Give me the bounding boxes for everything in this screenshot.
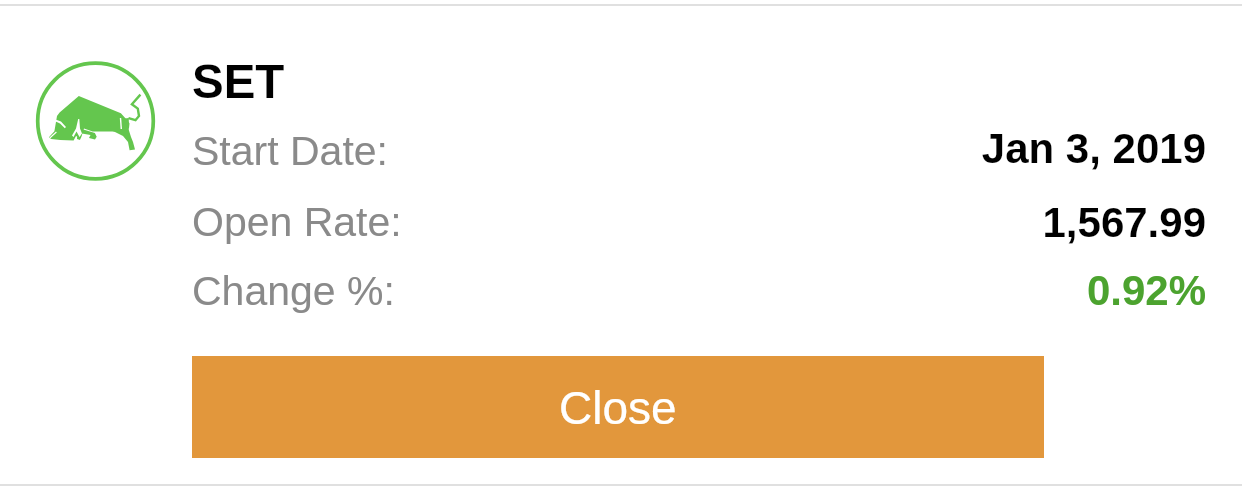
button[interactable]: Close xyxy=(192,356,1044,458)
staticText: Start Date: xyxy=(192,128,388,174)
staticText: 0.92% xyxy=(600,267,1206,314)
staticText: Open Rate: xyxy=(192,199,402,245)
staticText: Jan 3, 2019 xyxy=(600,125,1206,172)
staticText: Change %: xyxy=(192,268,395,314)
staticText: SET xyxy=(192,55,285,108)
staticText: Close xyxy=(559,382,677,433)
staticText: 1,567.99 xyxy=(600,199,1206,246)
